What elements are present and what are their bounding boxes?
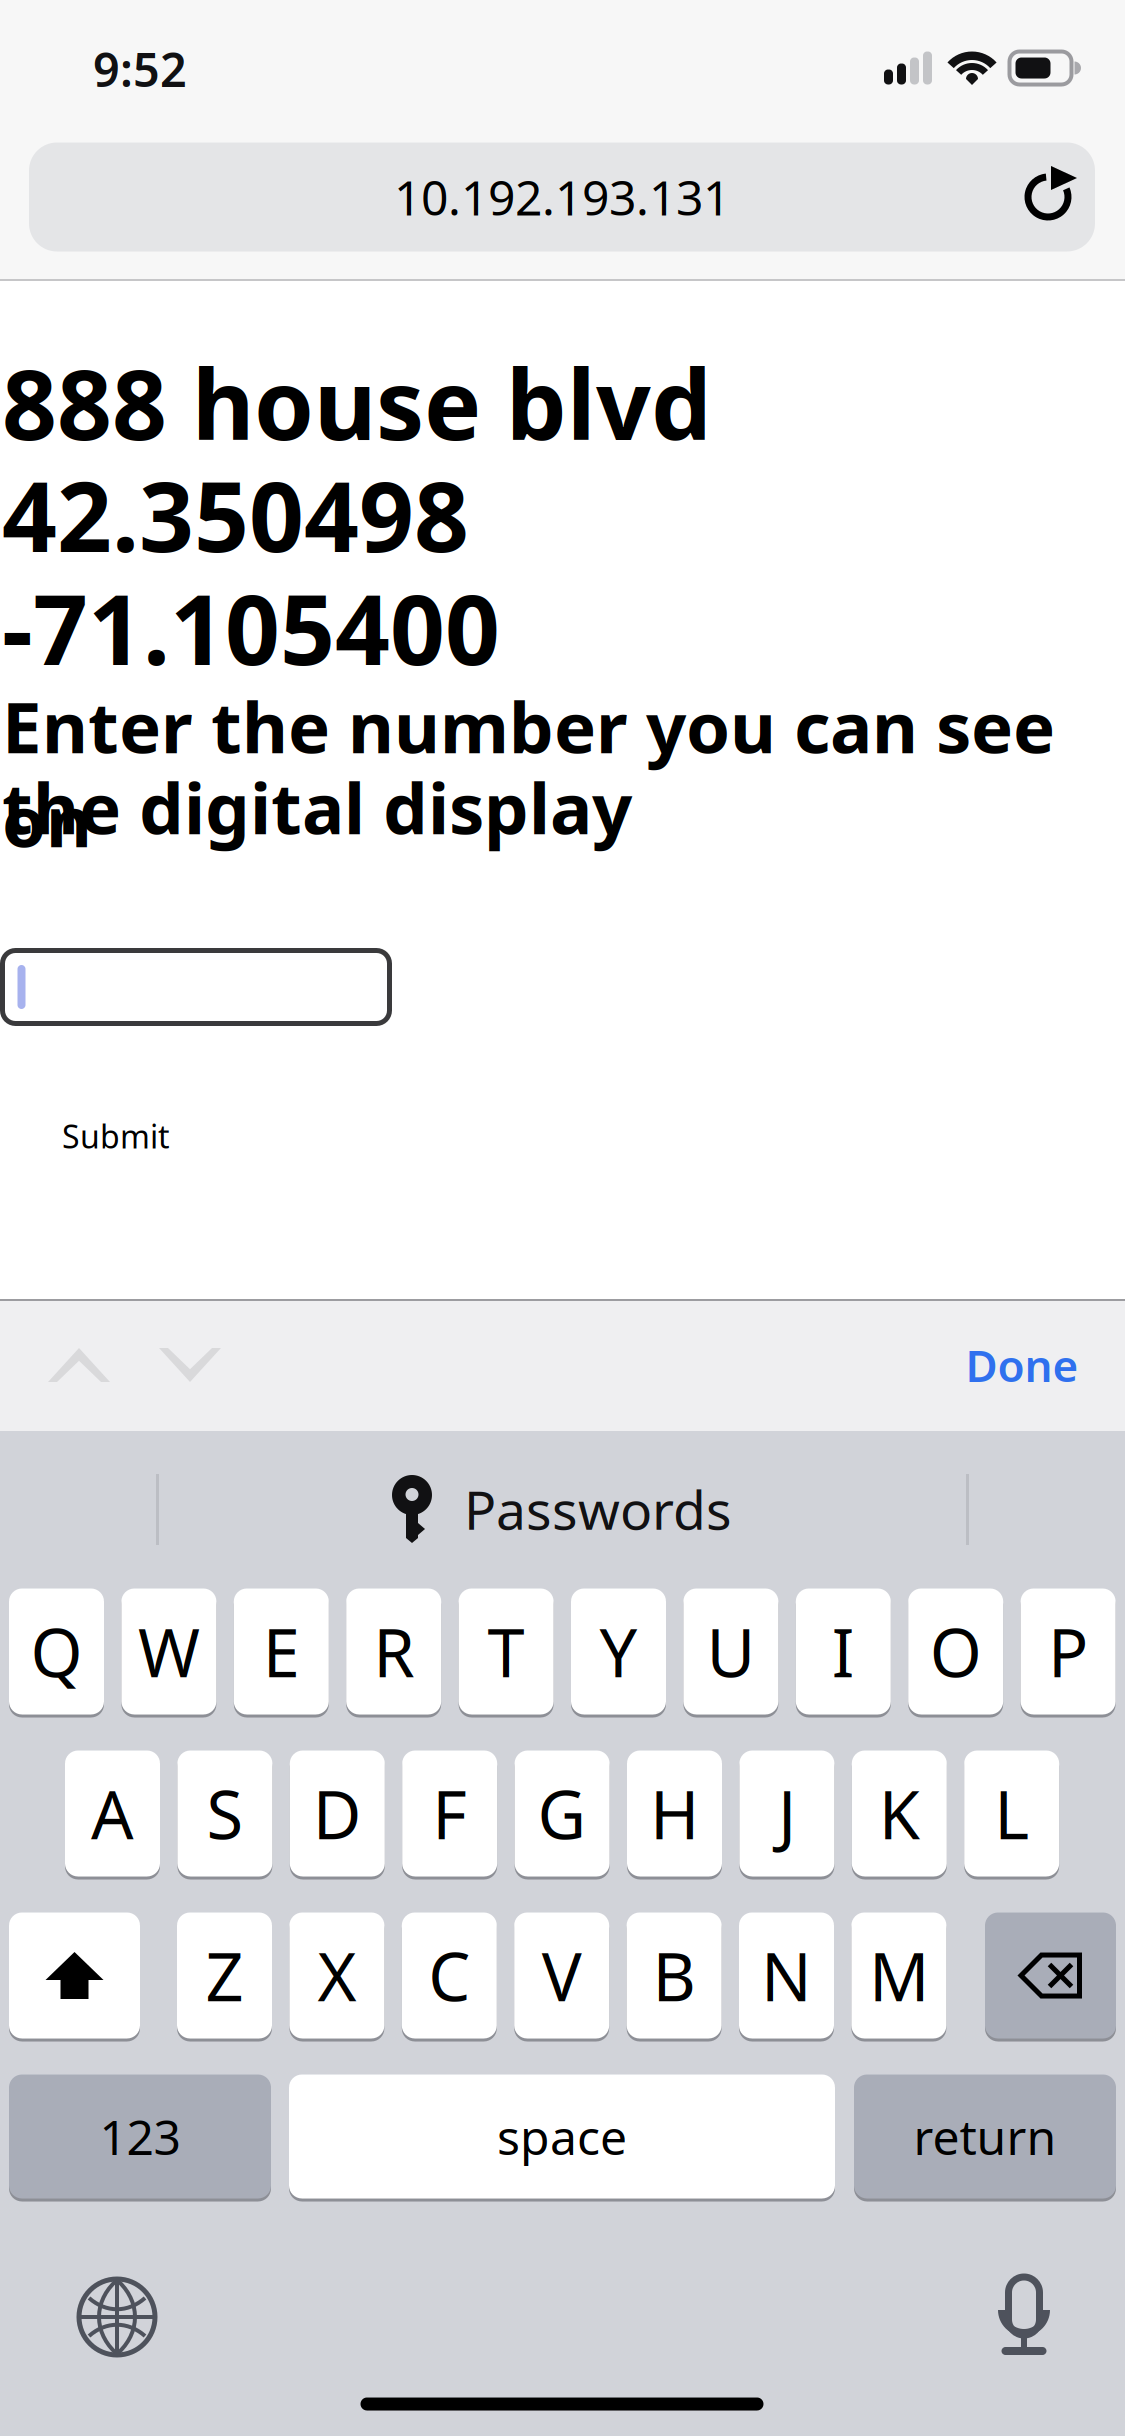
staticText: H <box>650 1769 699 1858</box>
button[interactable]: return <box>854 2073 1116 2200</box>
staticText: R <box>373 1607 414 1696</box>
button[interactable]: Z <box>177 1911 272 2040</box>
button[interactable]: Y <box>571 1587 666 1716</box>
button[interactable]: 10.192.193.131 <box>29 142 1095 251</box>
button[interactable]: Submit <box>51 1106 181 1166</box>
button[interactable]: F <box>402 1749 497 1878</box>
button[interactable]: C <box>402 1911 497 2040</box>
button[interactable]: Previous field <box>24 1310 134 1420</box>
staticText: 42.350498 <box>2 451 469 578</box>
staticText: 9:52 <box>93 38 187 100</box>
staticText: M <box>869 1931 929 2020</box>
staticText: I <box>832 1607 855 1696</box>
staticText: B <box>653 1931 696 2020</box>
staticText: D <box>313 1769 362 1858</box>
staticText: L <box>994 1769 1029 1858</box>
button[interactable]: Switch keyboard <box>52 2252 182 2382</box>
staticText: Enter the number you can see on <box>2 679 1055 867</box>
staticText: F <box>432 1769 467 1858</box>
button[interactable]: X <box>289 1911 384 2040</box>
staticText: Q <box>30 1607 82 1696</box>
staticText: T <box>488 1607 525 1696</box>
staticText: C <box>428 1931 470 2020</box>
button[interactable]: S <box>177 1749 272 1878</box>
staticText: S <box>206 1769 243 1858</box>
staticText: P <box>1048 1607 1088 1696</box>
staticText: 888 house blvd <box>2 339 712 466</box>
button[interactable]: W <box>121 1587 216 1716</box>
button[interactable]: P <box>1021 1587 1116 1716</box>
staticText: K <box>879 1769 920 1858</box>
staticText: 10.192.193.131 <box>394 165 730 229</box>
staticText: N <box>761 1931 812 2020</box>
button[interactable]: B <box>627 1911 722 2040</box>
staticText: E <box>263 1607 300 1696</box>
staticText: return <box>913 2105 1056 2168</box>
button[interactable]: N <box>739 1911 834 2040</box>
staticText: 123 <box>99 2105 180 2168</box>
button[interactable]: M <box>851 1911 946 2040</box>
button[interactable]: V <box>514 1911 609 2040</box>
button[interactable]: R <box>346 1587 441 1716</box>
staticText: Z <box>205 1931 243 2020</box>
button[interactable]: T <box>459 1587 554 1716</box>
button[interactable]: Shift <box>9 1911 140 2040</box>
button[interactable]: G <box>515 1749 610 1878</box>
staticText: Submit <box>62 1115 170 1157</box>
button[interactable]: 123 <box>9 2073 271 2200</box>
staticText: A <box>91 1769 134 1858</box>
button[interactable]: E <box>234 1587 329 1716</box>
staticText: W <box>138 1607 200 1696</box>
staticText: J <box>778 1769 796 1858</box>
staticText: V <box>542 1931 582 2020</box>
staticText: Y <box>599 1607 637 1696</box>
button[interactable]: D <box>290 1749 385 1878</box>
button[interactable]: Q <box>9 1587 104 1716</box>
staticText: U <box>706 1607 755 1696</box>
button[interactable]: O <box>908 1587 1003 1716</box>
button[interactable]: Dictation <box>959 2252 1089 2382</box>
button[interactable]: Done <box>952 1315 1092 1415</box>
staticText: space <box>497 2105 627 2168</box>
button[interactable]: K <box>852 1749 947 1878</box>
staticText: Done <box>965 1336 1078 1394</box>
staticText: G <box>538 1769 587 1858</box>
button[interactable]: A <box>65 1749 160 1878</box>
button[interactable]: J <box>739 1749 834 1878</box>
button[interactable]: Next field <box>135 1310 245 1420</box>
button[interactable]: Delete <box>985 1911 1116 2040</box>
staticText: Passwords <box>464 1474 732 1544</box>
button[interactable]: L <box>964 1749 1059 1878</box>
button[interactable]: space <box>289 2073 835 2200</box>
button[interactable]: U <box>683 1587 778 1716</box>
staticText: the digital display <box>2 760 632 854</box>
button[interactable]: I <box>796 1587 891 1716</box>
button[interactable]: H <box>627 1749 722 1878</box>
staticText: -71.105400 <box>2 564 500 691</box>
staticText: O <box>930 1607 982 1696</box>
staticText: X <box>317 1931 356 2020</box>
